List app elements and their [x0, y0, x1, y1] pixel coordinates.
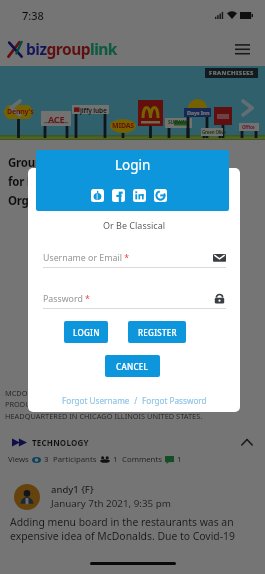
staticText: 1	[113, 454, 118, 465]
staticText: TECHNOLOGY	[32, 437, 89, 448]
button[interactable]: Forgot Username	[62, 395, 130, 406]
button[interactable]: REGISTER	[128, 321, 186, 343]
staticText: REGISTER	[138, 327, 177, 338]
staticText: Green Olive	[202, 129, 226, 135]
staticText: 1	[177, 454, 182, 465]
staticText: Views	[8, 454, 29, 465]
staticText: SUBWAY	[168, 119, 188, 126]
staticText: Group Collaboration Platform and for Pro…	[8, 155, 194, 208]
staticText: January 7th 2021, 9:35 pm	[51, 497, 171, 510]
button[interactable]: Forgot Password	[142, 395, 207, 406]
staticText: Or Be Classical	[28, 219, 240, 231]
button[interactable]: Menu	[231, 37, 253, 59]
staticText: Denny's	[7, 107, 34, 117]
staticText: FRANCHISEES	[209, 69, 254, 77]
button[interactable]: Sign in with Facebook	[112, 189, 125, 202]
staticText: andy1 {F}	[51, 483, 94, 496]
staticText: Login	[115, 156, 151, 174]
staticText: 3	[44, 454, 49, 465]
button[interactable]: CANCEL	[105, 355, 160, 377]
staticText: LOGIN	[73, 327, 100, 338]
staticText: Office	[242, 124, 255, 130]
button[interactable]: Sign in with LinkedIn	[133, 189, 146, 202]
staticText: CANCEL	[116, 361, 149, 372]
staticText: 7:38	[22, 8, 44, 23]
staticText: Participants	[53, 454, 97, 465]
button[interactable]: TECHNOLOGY	[12, 434, 253, 450]
button[interactable]: LOGIN	[64, 321, 108, 343]
staticText: Password *	[43, 293, 90, 305]
staticText: Adding menu board in the restaurants was…	[10, 515, 235, 543]
staticText: jiffy lube	[80, 106, 107, 115]
staticText: Comments	[122, 454, 162, 465]
staticText: Days Inn	[187, 109, 210, 116]
staticText: bizgrouplink	[26, 38, 117, 59]
staticText: Username or Email *	[43, 252, 130, 264]
staticText: MCDONALDS IS A FAST FOOD RESTAURANT CHAI…	[5, 388, 203, 422]
button[interactable]: Sign in with Apple	[91, 189, 104, 202]
staticText: /	[130, 395, 142, 406]
button[interactable]: Sign in with Google	[154, 189, 167, 202]
staticText: MIDAS	[112, 121, 135, 131]
staticText: ACE	[48, 113, 65, 125]
